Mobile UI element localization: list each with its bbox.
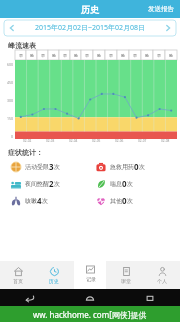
button[interactable]: 历史 [36, 261, 72, 289]
staticText: 晚 [121, 53, 125, 58]
staticText: 600 [7, 62, 14, 67]
staticText: 历史 [81, 4, 99, 15]
staticText: 4 [37, 195, 42, 206]
staticText: 02-04 [69, 139, 78, 143]
staticText: 夜间憋醒 [25, 180, 49, 188]
staticText: 0 [11, 134, 14, 139]
button[interactable]: 急救用药 [95, 158, 180, 175]
button[interactable]: Previous week [4, 20, 20, 36]
button[interactable]: Home [60, 289, 120, 306]
staticText: ww. hackhome. com[网侠]提供 [33, 309, 147, 320]
staticText: 次 [54, 163, 60, 171]
staticText: 早 [157, 53, 161, 58]
button[interactable]: 其他 [95, 192, 180, 209]
staticText: 急救用药 [110, 163, 134, 171]
staticText: 次 [127, 180, 133, 188]
staticText: 早 [85, 53, 89, 58]
staticText: 晚 [145, 53, 149, 58]
staticText: 次 [139, 163, 145, 171]
staticText: 0 [122, 178, 127, 189]
staticText: 晚 [169, 53, 173, 58]
staticText: 早 [133, 53, 137, 58]
staticText: 课堂 [121, 278, 131, 284]
staticText: 0 [134, 161, 139, 172]
button[interactable]: 喘息 [95, 175, 180, 192]
button[interactable]: 发送报告 [142, 2, 180, 16]
staticText: 活动受限 [25, 163, 49, 171]
staticText: 2 [49, 178, 54, 189]
staticText: 咳嗽 [25, 197, 37, 205]
staticText: 晚 [74, 53, 78, 58]
staticText: 3 [49, 161, 54, 172]
staticText: 症状统计： [8, 148, 43, 157]
button[interactable]: 课堂 [108, 261, 144, 289]
button[interactable]: Back [0, 289, 60, 306]
staticText: 其他 [110, 197, 122, 205]
staticText: 次 [54, 180, 60, 188]
staticText: 02-06 [115, 139, 124, 143]
staticText: 喘息 [110, 180, 122, 188]
staticText: 次 [127, 197, 133, 205]
staticText: 早 [63, 53, 67, 58]
staticText: 早 [109, 53, 113, 58]
button[interactable]: Next week [160, 20, 176, 36]
staticText: 2015年02月02日~2015年02月08日 [20, 23, 160, 33]
button[interactable]: 活动受限 [10, 158, 95, 175]
staticText: 个人 [157, 278, 167, 284]
button[interactable]: 个人 [144, 261, 180, 289]
staticText: 发送报告 [148, 5, 174, 13]
staticText: 首页 [13, 278, 23, 284]
staticText: 02-07 [138, 139, 147, 143]
staticText: 早 [41, 53, 45, 58]
staticText: 记录 [86, 276, 96, 282]
staticText: 次 [42, 197, 48, 205]
staticText: 450 [7, 80, 14, 85]
staticText: 150 [7, 116, 14, 121]
button[interactable]: Recents [120, 289, 180, 306]
staticText: 早 [19, 53, 23, 58]
staticText: 0 [122, 195, 127, 206]
staticText: 02-02 [23, 139, 32, 143]
staticText: 02-05 [92, 139, 101, 143]
staticText: 晚 [52, 53, 56, 58]
staticText: 300 [7, 98, 14, 103]
button[interactable]: 咳嗽 [10, 192, 95, 209]
staticText: 晚 [30, 53, 34, 58]
staticText: 历史 [49, 278, 59, 284]
staticText: 晚 [97, 53, 101, 58]
staticText: 峰流速表 [8, 41, 36, 50]
button[interactable]: 夜间憋醒 [10, 175, 95, 192]
button[interactable]: 首页 [0, 261, 36, 289]
button[interactable]: 记录 [74, 256, 106, 289]
staticText: 02-03 [46, 139, 55, 143]
staticText: 02-08 [161, 139, 170, 143]
